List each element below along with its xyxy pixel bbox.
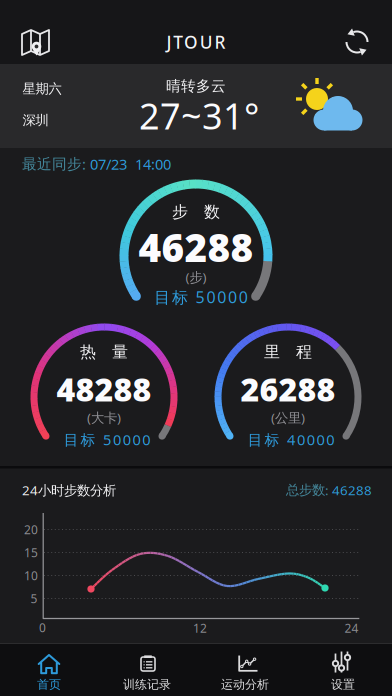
staticText: 15	[24, 544, 38, 560]
button[interactable]: 设置	[294, 643, 392, 696]
button[interactable]: 首页	[0, 643, 98, 696]
staticText: 12	[193, 620, 207, 636]
staticText: 0	[39, 619, 46, 635]
staticText: 24	[344, 620, 358, 636]
staticText: JTOUR	[166, 30, 226, 53]
staticText: 训练记录	[123, 677, 171, 692]
button[interactable]: 训练记录	[98, 643, 196, 696]
button[interactable]: 地图	[16, 25, 50, 59]
button[interactable]: 同步	[340, 25, 374, 59]
staticText: 步 数	[172, 202, 220, 222]
staticText: :	[325, 481, 332, 499]
staticText: 里 程	[264, 342, 312, 362]
staticText: 星期六	[22, 81, 61, 97]
staticText: 27~31°	[139, 92, 259, 139]
staticText: 07/23 14:00	[90, 154, 171, 174]
staticText: :	[82, 154, 90, 174]
button[interactable]: 运动分析	[196, 643, 294, 696]
staticText: 热 量	[80, 342, 128, 362]
staticText: 目标 50000	[154, 286, 248, 308]
staticText: 运动分析	[221, 677, 269, 692]
staticText: (公里)	[271, 409, 305, 426]
staticText: 目标 50000	[64, 430, 150, 449]
staticText: 24小时步数分析	[22, 481, 116, 499]
staticText: 总步数	[286, 482, 325, 498]
staticText: 20	[24, 521, 38, 537]
staticText: 晴转多云	[166, 77, 226, 95]
staticText: 设置	[331, 677, 355, 692]
staticText: 最近同步	[22, 155, 82, 173]
staticText: 48288	[56, 368, 151, 410]
staticText: 46288	[138, 221, 253, 273]
staticText: 首页	[37, 677, 61, 692]
staticText: (大卡)	[87, 409, 121, 426]
staticText: 5	[30, 590, 37, 606]
staticText: (步)	[185, 268, 206, 286]
staticText: 目标 40000	[248, 430, 334, 449]
staticText: 深圳	[22, 112, 48, 128]
staticText: 26288	[240, 368, 335, 410]
staticText: 46288	[332, 481, 372, 499]
staticText: 10	[24, 567, 38, 583]
